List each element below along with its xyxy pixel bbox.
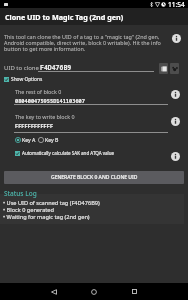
button[interactable]: Recent apps xyxy=(114,283,154,300)
button[interactable]: Automatically calculate SAK and ATQA val… xyxy=(15,150,115,156)
button[interactable]: More information xyxy=(169,150,182,163)
button[interactable]: Paste UID xyxy=(159,63,168,74)
staticText: The key to write block 0 xyxy=(15,113,75,120)
staticText: Status Log xyxy=(4,189,37,198)
button[interactable]: Scan tag xyxy=(170,63,179,74)
staticText: • Use UID of scanned tag (F4D476B9) xyxy=(3,199,100,207)
button[interactable]: Key B xyxy=(38,136,59,143)
staticText: This tool can clone the UID of a tag to … xyxy=(4,33,161,53)
button[interactable]: More information xyxy=(169,115,182,128)
button[interactable]: GENERATE BLOCK 0 AND CLONE UID xyxy=(4,171,184,184)
staticText: • Waiting for magic tag (2nd gen) xyxy=(3,213,90,221)
staticText: The rest of block 0 xyxy=(15,88,62,95)
staticText: GENERATE BLOCK 0 AND CLONE UID xyxy=(51,174,138,181)
staticText: UID to clone xyxy=(4,64,39,72)
button[interactable]: Key A xyxy=(15,136,36,143)
staticText: Key A xyxy=(22,136,36,143)
staticText: 080400475955D141103607 xyxy=(15,97,85,104)
staticText: Key B xyxy=(45,136,59,143)
staticText: Show Options xyxy=(11,76,43,83)
staticText: 11:54 xyxy=(168,0,185,8)
staticText: Automatically calculate SAK and ATQA val… xyxy=(22,150,115,156)
staticText: F4D476B9 xyxy=(40,63,72,72)
button[interactable]: More information xyxy=(169,88,182,101)
staticText: FFFFFFFFFFFF xyxy=(15,122,54,129)
button[interactable]: Show Options xyxy=(4,76,43,83)
button[interactable]: More information xyxy=(170,32,183,45)
button[interactable]: Back xyxy=(34,283,74,300)
button[interactable]: Home xyxy=(74,283,114,300)
staticText: • Block 0 generated xyxy=(3,206,54,214)
staticText: Clone UID to Magic Tag (2nd gen) xyxy=(5,12,124,22)
